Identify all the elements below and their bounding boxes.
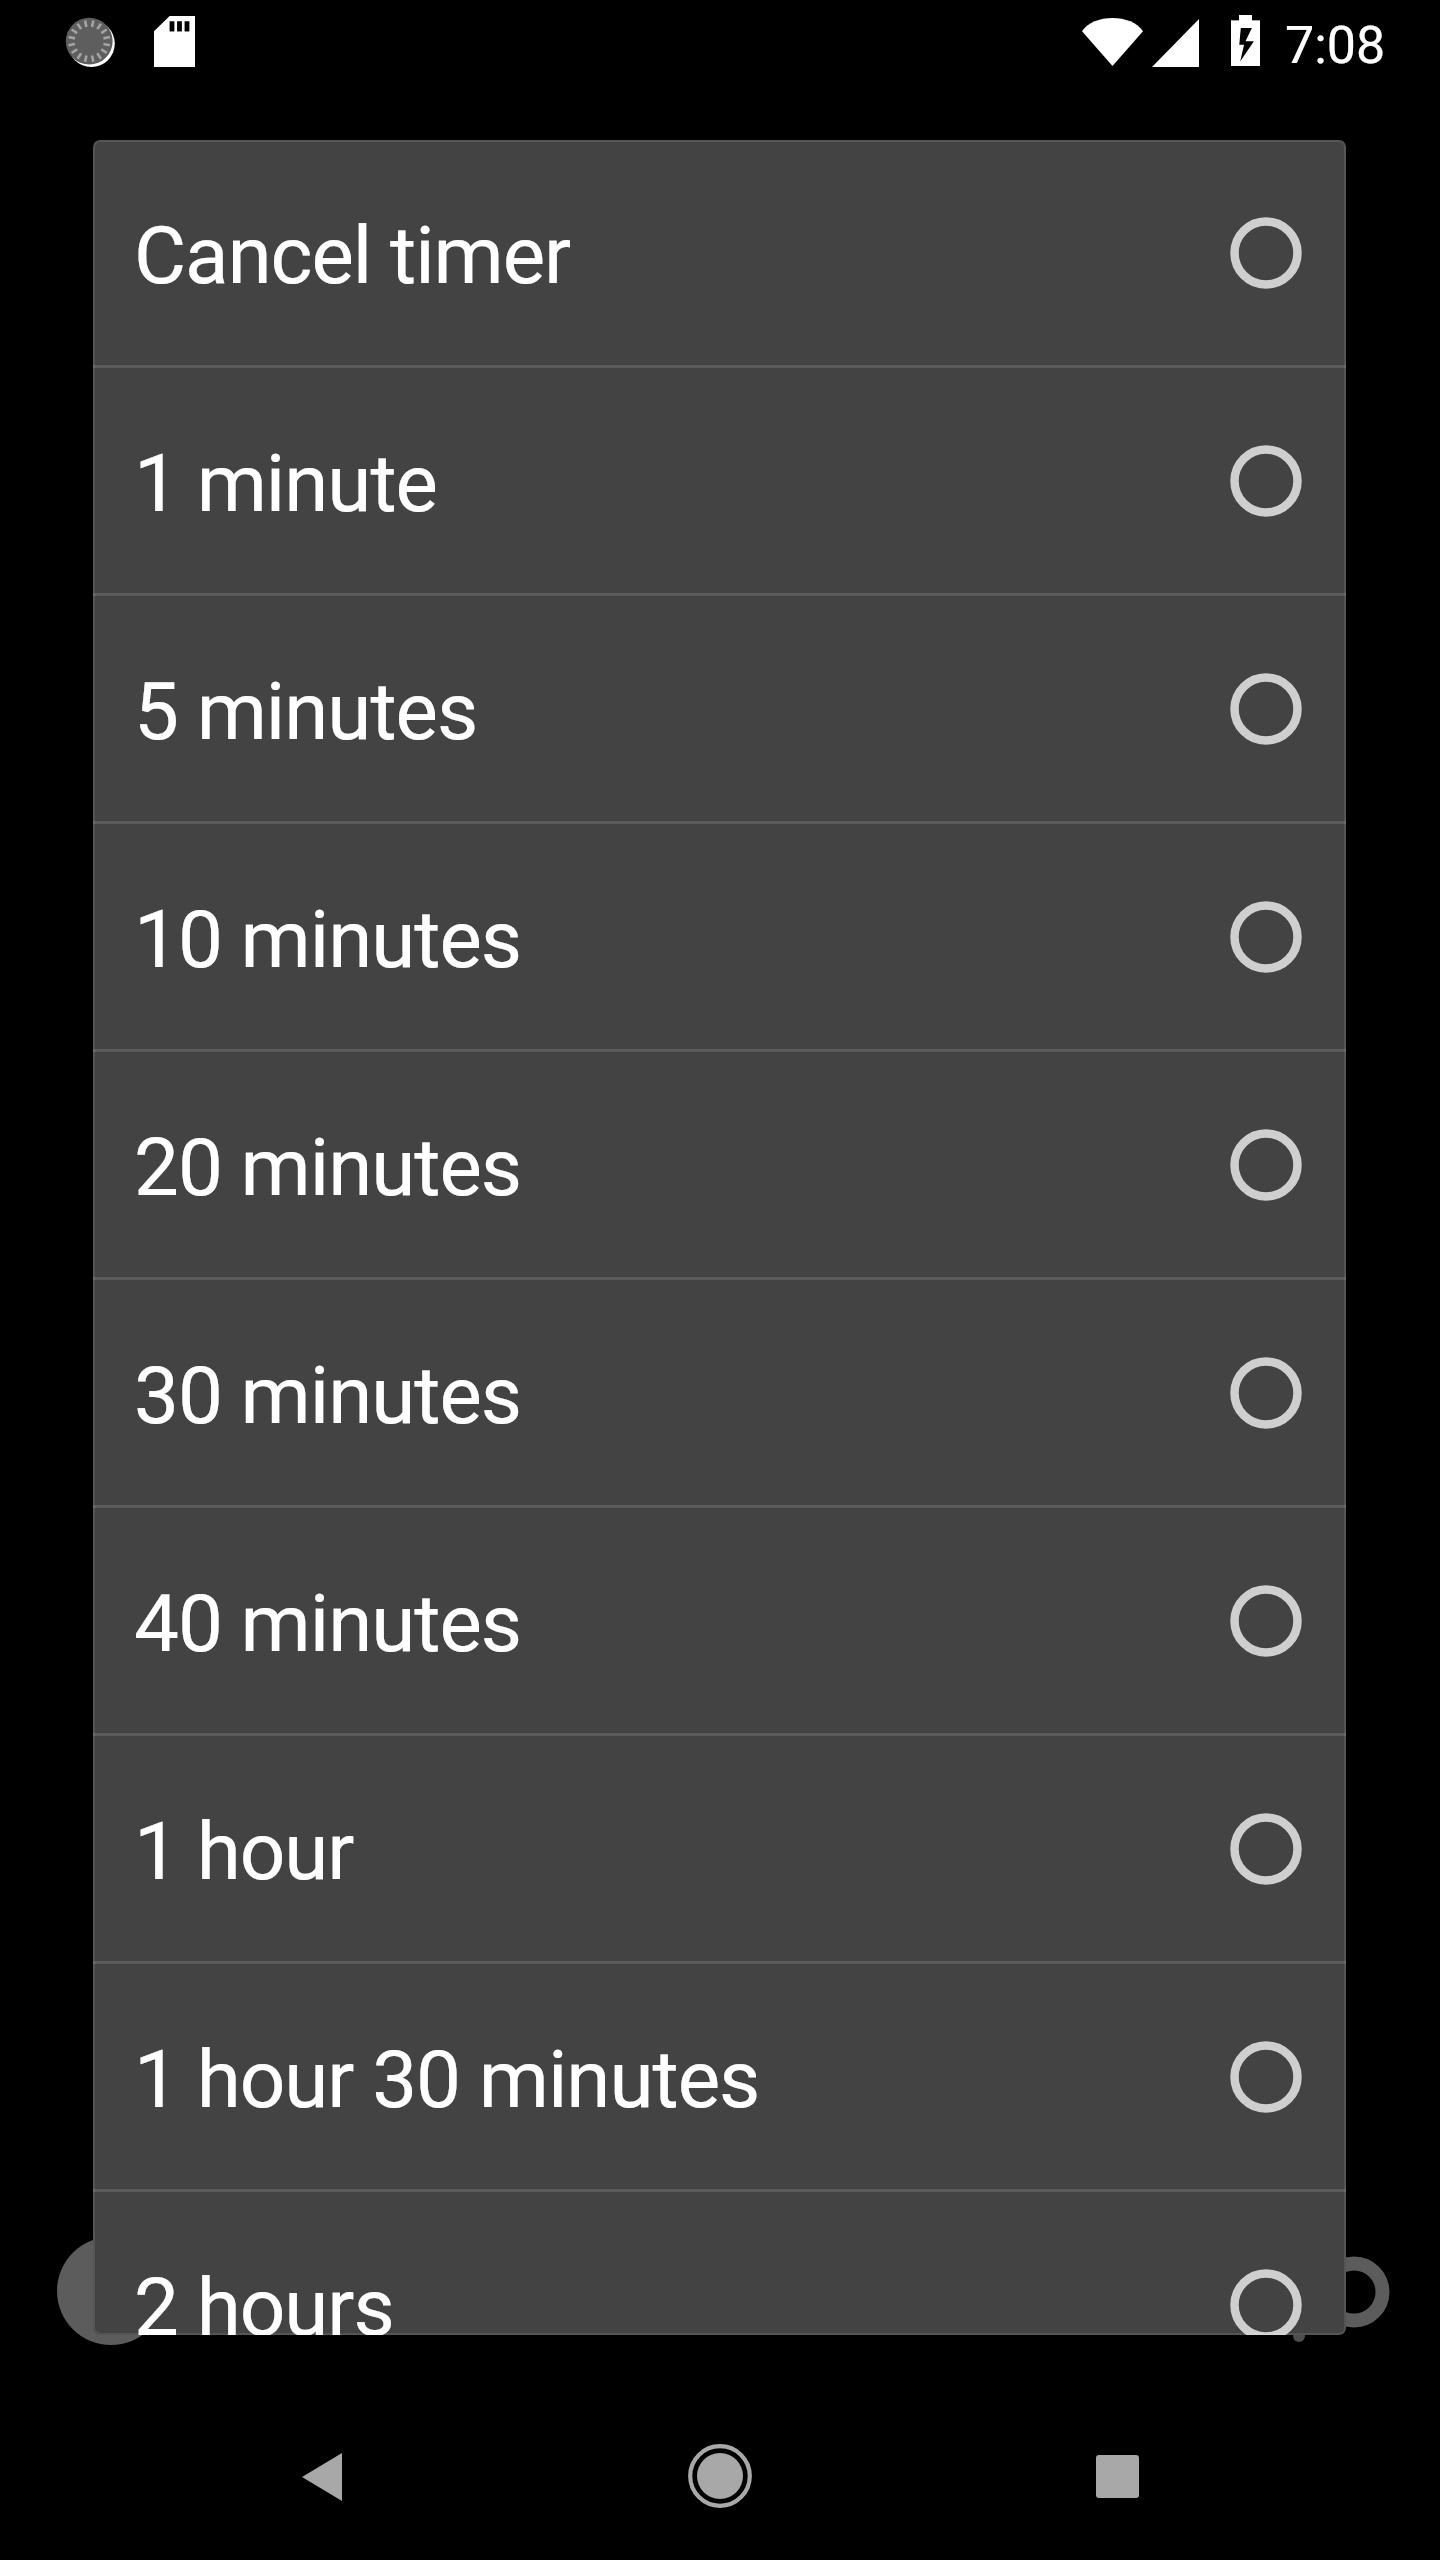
button[interactable]: 10 minutes	[93, 824, 1346, 1049]
staticText: 1 minute	[134, 437, 437, 531]
staticText: 1 hour	[134, 1805, 354, 1899]
button[interactable]: 1 hour 30 minutes	[93, 1964, 1346, 2189]
button[interactable]: 20 minutes	[93, 1052, 1346, 1277]
staticText: 7:08	[1285, 15, 1386, 76]
button[interactable]: 1 minute	[93, 368, 1346, 593]
staticText: 40 minutes	[134, 1577, 522, 1671]
staticText: 10 minutes	[134, 893, 522, 987]
staticText: 1 hour 30 minutes	[134, 2033, 760, 2127]
button[interactable]: Recent apps	[1045, 2404, 1190, 2549]
staticText: 2 hours	[134, 2261, 394, 2335]
button[interactable]: 5 minutes	[93, 596, 1346, 821]
button[interactable]: Back	[249, 2404, 394, 2549]
button[interactable]: 30 minutes	[93, 1280, 1346, 1505]
button[interactable]: 2 hours	[93, 2192, 1346, 2335]
staticText: 30 minutes	[134, 1349, 522, 1443]
staticText: 20 minutes	[134, 1121, 522, 1215]
button[interactable]: 40 minutes	[93, 1508, 1346, 1733]
button[interactable]: 1 hour	[93, 1736, 1346, 1961]
staticText: Cancel timer	[134, 209, 571, 303]
button[interactable]: Home	[647, 2403, 792, 2548]
button[interactable]: Cancel timer	[93, 140, 1346, 365]
staticText: 5 minutes	[134, 665, 478, 759]
